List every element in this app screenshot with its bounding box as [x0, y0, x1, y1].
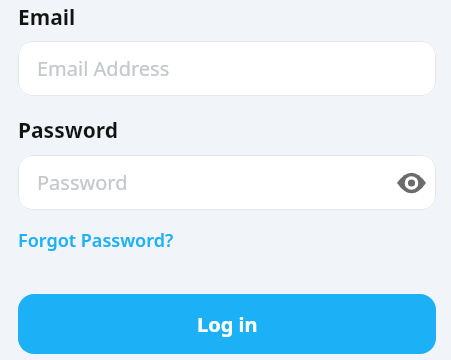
staticText: Password	[37, 169, 397, 196]
staticText: Log in	[197, 311, 258, 338]
staticText: Password	[18, 116, 119, 145]
button[interactable]: Email Address	[18, 41, 436, 96]
staticText: Email	[18, 3, 76, 32]
button[interactable]: Forgot Password?	[18, 228, 174, 253]
button[interactable]: Log in	[18, 294, 436, 354]
staticText: Email Address	[37, 55, 170, 82]
button[interactable]: Password	[18, 155, 436, 210]
